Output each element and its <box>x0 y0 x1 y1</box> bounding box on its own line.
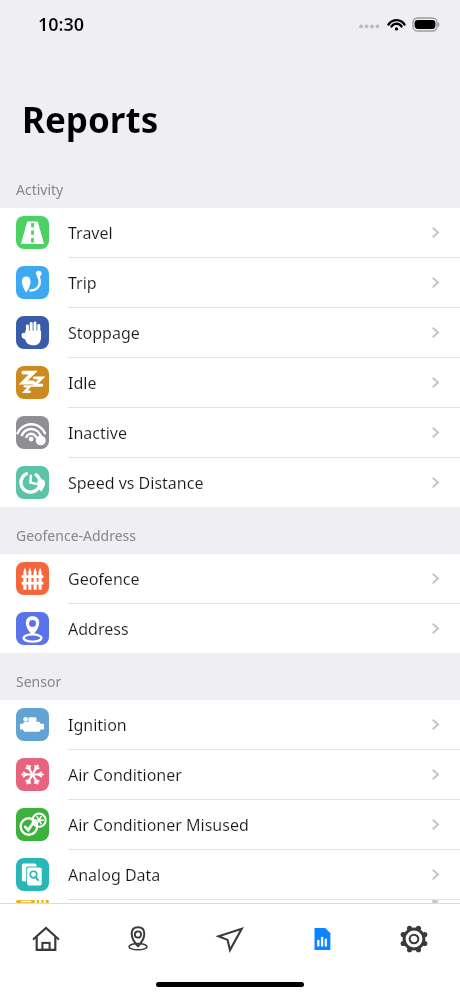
button[interactable]: Ignition <box>0 700 460 750</box>
staticText: Travel <box>68 222 427 244</box>
staticText: Air Conditioner <box>68 764 427 786</box>
staticText: Geofence <box>68 568 427 590</box>
button[interactable]: RFID Data <box>0 900 460 903</box>
button[interactable]: Locations <box>92 916 184 962</box>
button[interactable]: Inactive <box>0 408 460 458</box>
button[interactable]: Speed vs Distance <box>0 458 460 507</box>
button[interactable]: Travel <box>0 208 460 258</box>
button[interactable]: Geofence <box>0 554 460 604</box>
staticText: Inactive <box>68 422 427 444</box>
button[interactable]: Track <box>184 916 276 962</box>
button[interactable]: Address <box>0 604 460 653</box>
button[interactable]: Analog Data <box>0 850 460 900</box>
staticText: Activity <box>16 180 64 199</box>
button[interactable]: Stoppage <box>0 308 460 358</box>
staticText: Analog Data <box>68 864 427 886</box>
staticText: Idle <box>68 372 427 394</box>
staticText: Air Conditioner Misused <box>68 814 427 836</box>
staticText: Trip <box>68 272 427 294</box>
button[interactable]: Idle <box>0 358 460 408</box>
staticText: Geofence-Address <box>16 526 137 545</box>
staticText: Address <box>68 618 427 640</box>
button[interactable]: Home <box>0 916 92 962</box>
button[interactable]: Air Conditioner Misused <box>0 800 460 850</box>
staticText: Sensor <box>16 672 62 691</box>
staticText: 10:30 <box>38 12 85 37</box>
staticText: Speed vs Distance <box>68 472 427 494</box>
button[interactable]: Reports <box>276 916 368 962</box>
button[interactable]: Settings <box>368 916 460 962</box>
staticText: Ignition <box>68 714 427 736</box>
staticText: Stoppage <box>68 322 427 344</box>
staticText: Reports <box>22 96 159 144</box>
button[interactable]: Trip <box>0 258 460 308</box>
button[interactable]: Air Conditioner <box>0 750 460 800</box>
